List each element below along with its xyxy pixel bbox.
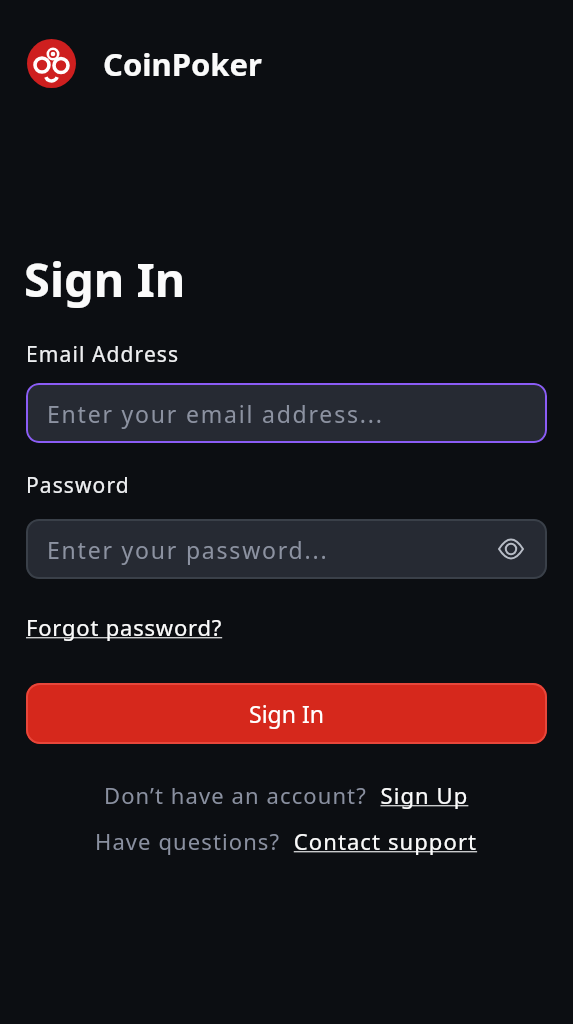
button[interactable]: Enter your password... <box>26 519 547 579</box>
staticText: Enter your email address... <box>47 398 384 429</box>
button[interactable]: Have questions? Contact support <box>95 826 478 856</box>
staticText: CoinPoker <box>103 43 262 85</box>
button[interactable]: Enter your email address... <box>26 383 547 443</box>
staticText: Sign In <box>24 247 186 311</box>
button[interactable]: Forgot password? <box>26 612 223 642</box>
staticText: Sign In <box>249 698 324 729</box>
staticText: Enter your password... <box>47 534 329 565</box>
staticText: Password <box>26 471 130 500</box>
button[interactable] <box>497 535 525 563</box>
staticText: Email Address <box>26 340 180 369</box>
button[interactable]: Don’t have an account? Sign Up <box>104 780 469 810</box>
button[interactable]: Sign In <box>26 683 547 744</box>
